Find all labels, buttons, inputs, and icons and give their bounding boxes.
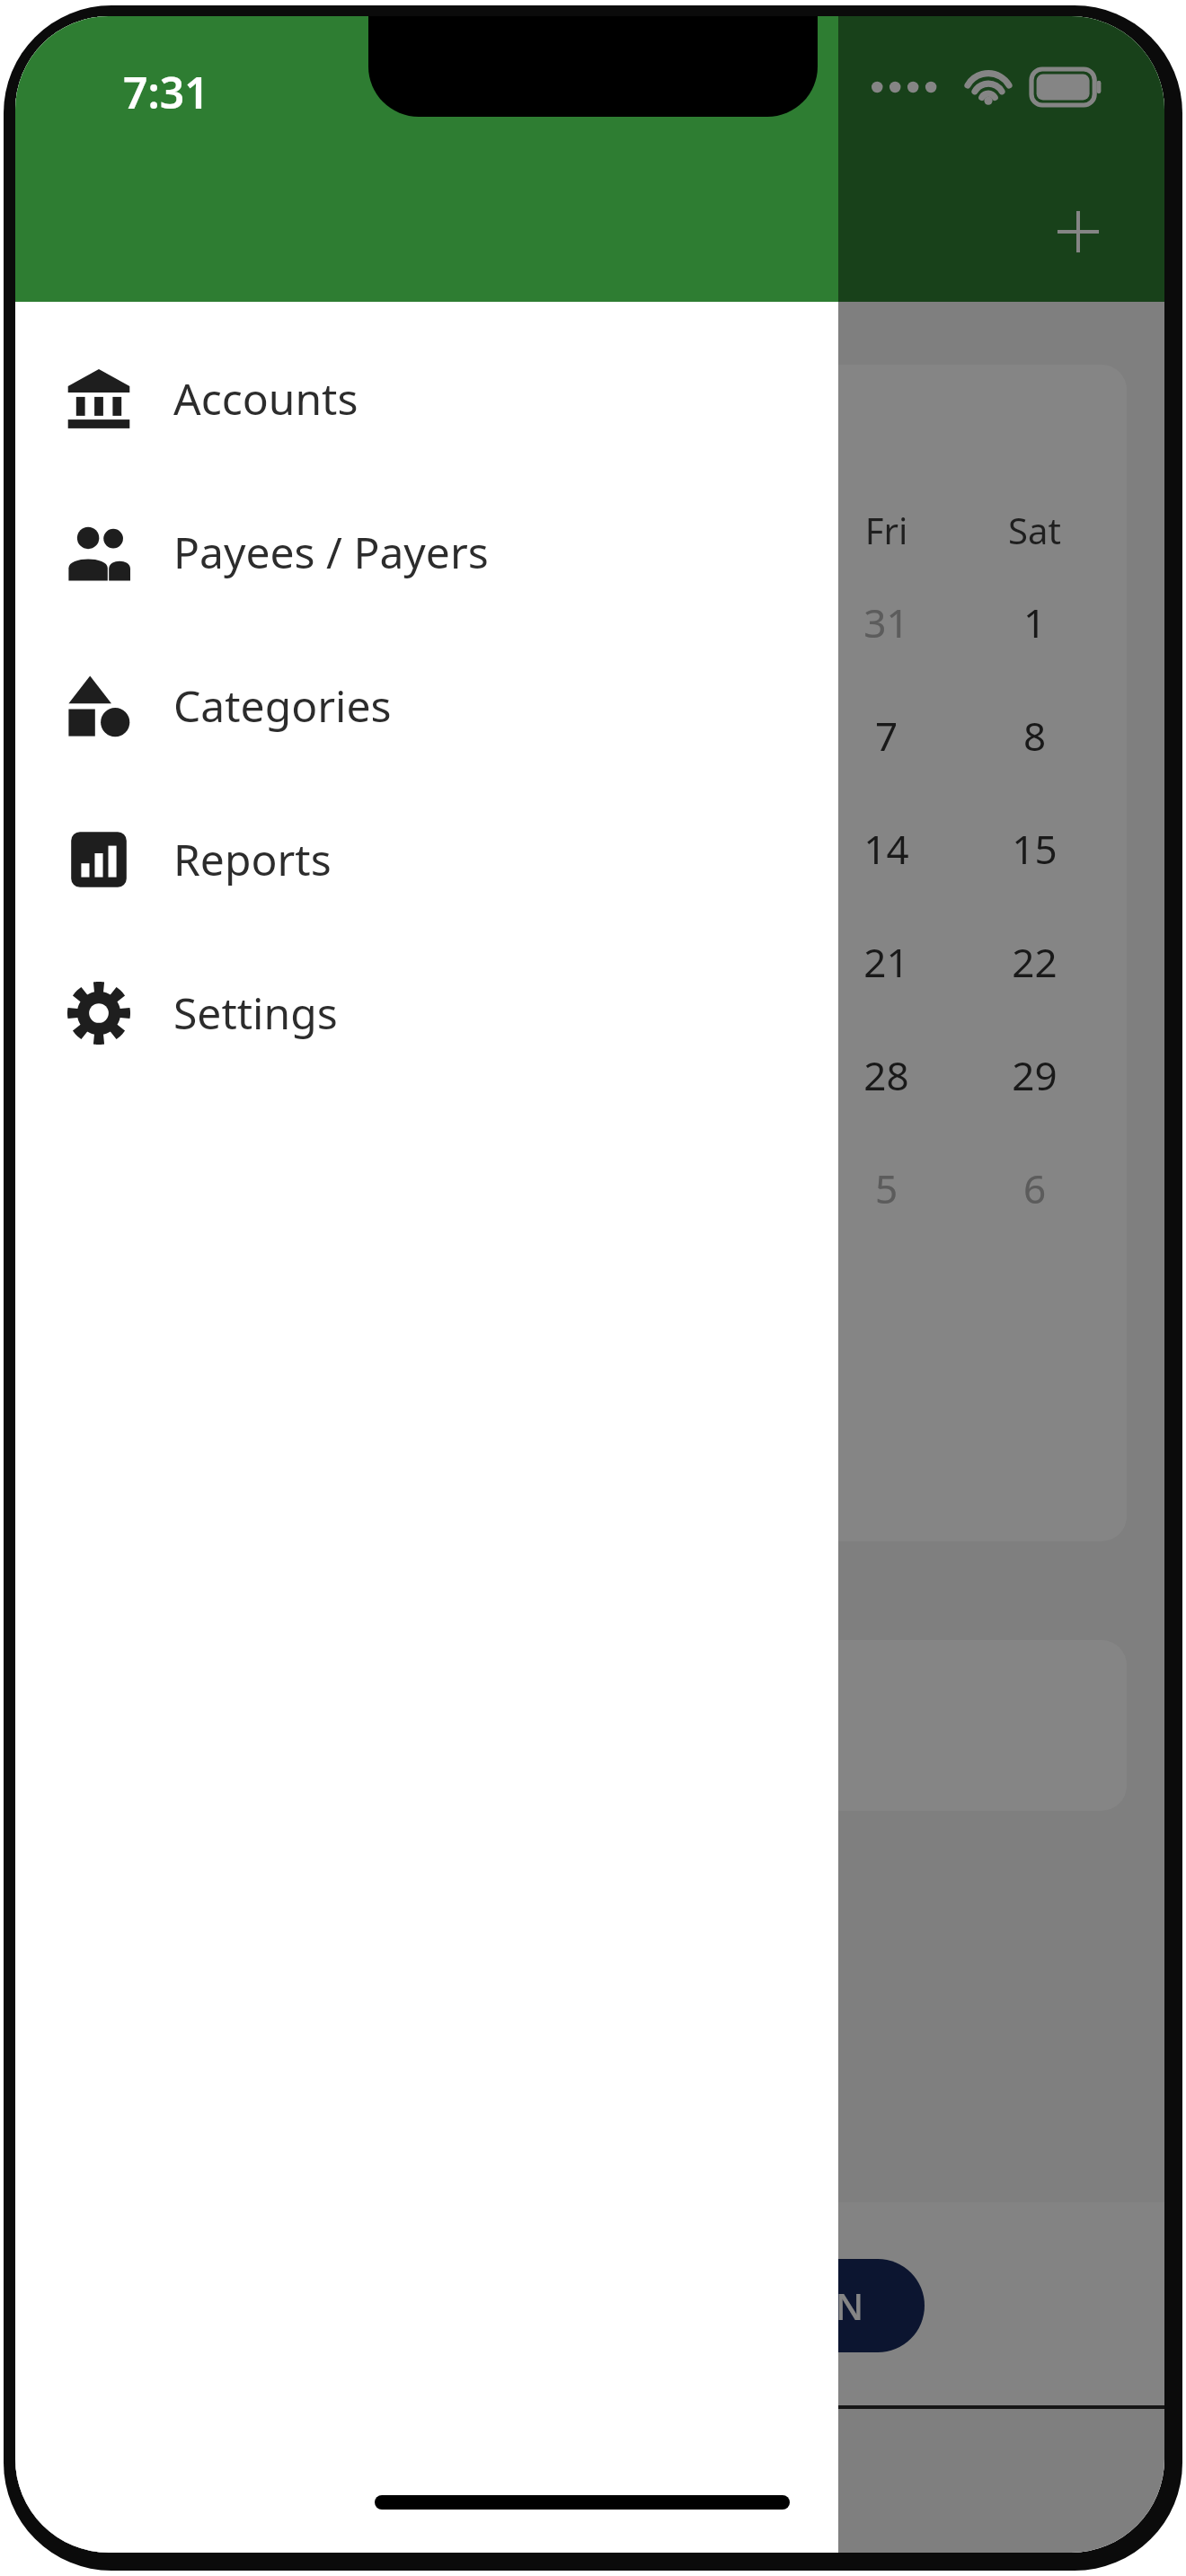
staticText: 28	[812, 1048, 960, 1102]
staticText: 14	[812, 822, 960, 876]
staticText: 3	[219, 709, 367, 763]
staticText: OPEN	[766, 2281, 864, 2330]
staticText: 29	[960, 1048, 1109, 1102]
staticText: 10	[219, 822, 367, 876]
staticText: Settings	[173, 984, 338, 1042]
staticText: 21	[812, 935, 960, 989]
button[interactable]: Payees / Payers	[15, 475, 838, 629]
staticText: 5	[812, 1161, 960, 1215]
button[interactable]: Add	[1046, 199, 1111, 264]
staticText: 8	[960, 709, 1109, 763]
button[interactable]: Settings	[15, 936, 838, 1090]
staticText: 1	[960, 595, 1109, 649]
staticText: 22	[960, 935, 1109, 989]
staticText: Accounts	[173, 369, 358, 428]
staticText: Tue	[367, 506, 516, 554]
staticText: 4	[367, 709, 516, 763]
staticText: 7	[812, 709, 960, 763]
staticText: 31	[812, 595, 960, 649]
staticText: 9	[71, 822, 219, 876]
staticText: 16	[71, 935, 219, 989]
button[interactable]: Accounts	[15, 322, 838, 475]
staticText: Sun	[71, 506, 219, 554]
staticText: 15	[960, 822, 1109, 876]
button[interactable]: OPEN	[705, 2259, 925, 2352]
button[interactable]: Categories	[15, 629, 838, 782]
staticText: Categories	[173, 676, 392, 735]
button[interactable]: Reports	[15, 782, 838, 936]
staticText: Sat	[960, 506, 1109, 554]
staticText: 2	[71, 709, 219, 763]
staticText: 7:31	[123, 63, 209, 121]
staticText: Fri	[812, 506, 960, 554]
staticText: Payees / Payers	[173, 523, 489, 581]
staticText: Reports	[173, 830, 332, 888]
staticText: Mon	[219, 506, 367, 554]
staticText: 6	[960, 1161, 1109, 1215]
